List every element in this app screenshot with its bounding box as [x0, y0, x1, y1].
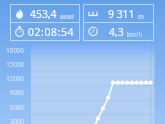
staticText: m [138, 12, 144, 20]
staticText: 12000 [6, 74, 24, 82]
staticText: 9000 [9, 88, 24, 96]
staticText: 9 311 [108, 7, 135, 21]
button[interactable]: Speed [83, 23, 154, 40]
staticText: 15000 [6, 60, 24, 68]
other: Speed [88, 26, 98, 37]
other: Distance [88, 8, 98, 19]
staticText: 6000 [9, 103, 24, 111]
staticText: km/h [127, 30, 143, 38]
staticText: 18000 [6, 46, 24, 54]
button[interactable]: Distance [83, 5, 154, 22]
other: Calories [15, 8, 24, 19]
other: Duration [15, 26, 24, 37]
button[interactable]: Duration [10, 23, 80, 40]
button[interactable]: Calories [10, 5, 80, 22]
staticText: 453,4 [30, 7, 57, 21]
staticText: 02:08:54 [28, 25, 75, 39]
staticText: ккал [60, 12, 74, 20]
staticText: 3000 [9, 117, 24, 124]
staticText: 4,3 [109, 25, 124, 39]
